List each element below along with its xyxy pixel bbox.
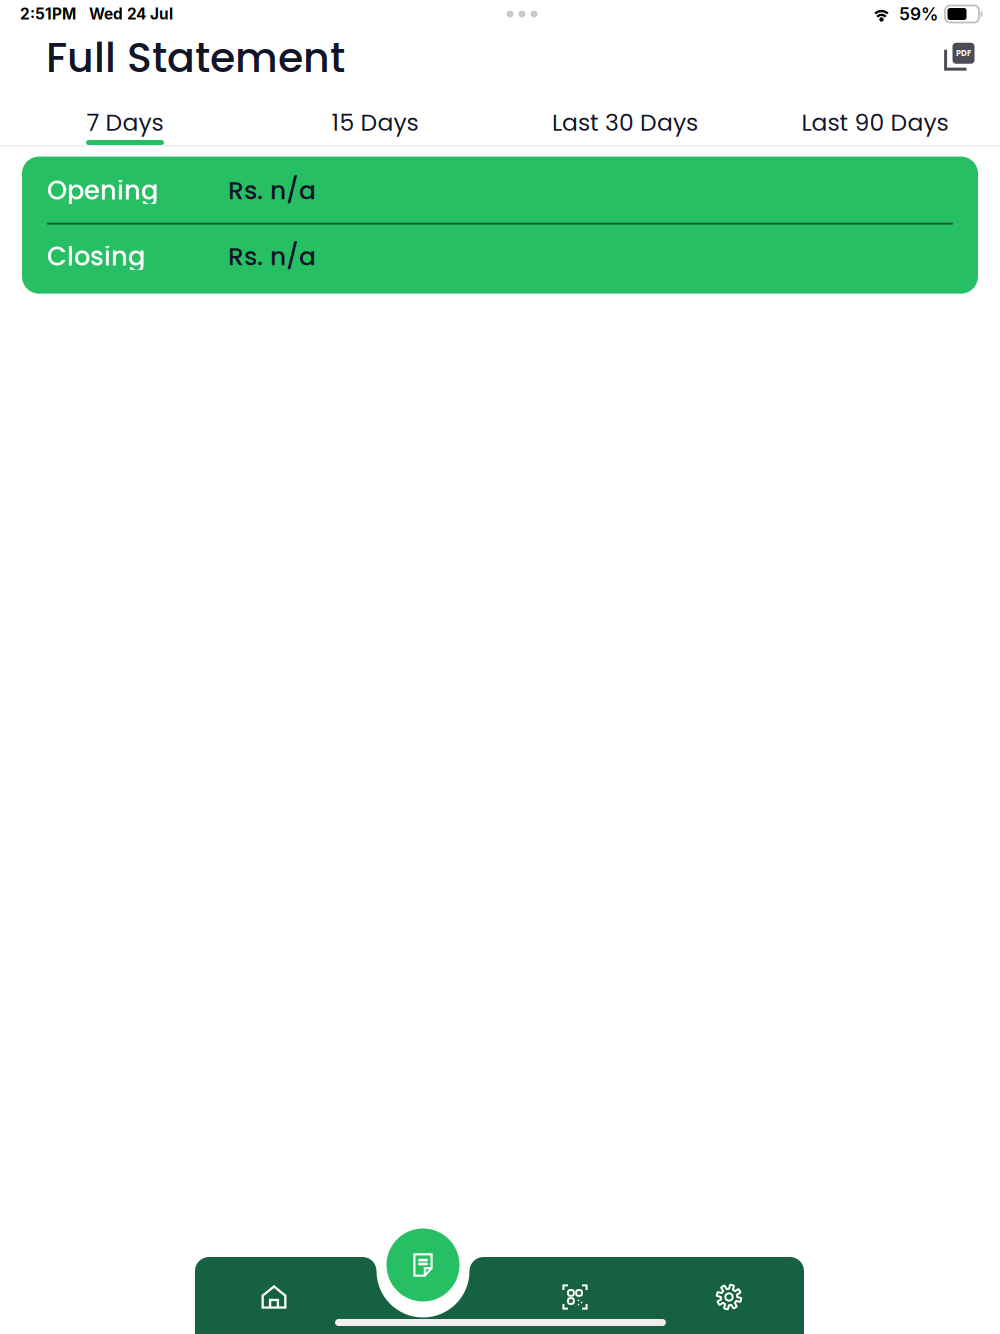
button[interactable]: Home — [236, 1271, 312, 1323]
button[interactable]: New statement — [386, 1228, 459, 1301]
staticText: PDF — [956, 48, 971, 59]
staticText: Wed 24 Jul — [89, 5, 173, 23]
staticText: Full Statement — [46, 29, 345, 86]
button[interactable]: Settings — [691, 1271, 767, 1323]
staticText: 15 Days — [331, 106, 418, 139]
staticText: Last 30 Days — [552, 106, 698, 139]
staticText: Closing — [47, 239, 145, 275]
button[interactable]: 15 Days — [250, 93, 500, 145]
staticText: Opening — [47, 173, 158, 209]
button[interactable]: Last 30 Days — [500, 93, 750, 145]
button[interactable]: Export as PDF — [938, 36, 982, 80]
staticText: Last 90 Days — [801, 106, 948, 139]
staticText: Rs. n/a — [228, 239, 316, 274]
button[interactable]: Last 90 Days — [750, 93, 1000, 145]
staticText: 59% — [899, 3, 938, 24]
button[interactable]: Scan QR code — [537, 1271, 613, 1323]
staticText: 2:51PM — [20, 5, 76, 23]
button[interactable]: 7 Days — [0, 93, 250, 145]
staticText: 7 Days — [86, 106, 163, 139]
staticText: Rs. n/a — [228, 173, 316, 208]
